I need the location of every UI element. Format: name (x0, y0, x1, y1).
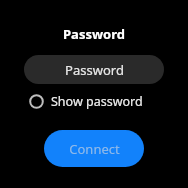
button[interactable]: Show password (29, 90, 159, 112)
button[interactable]: Connect (44, 130, 144, 167)
staticText: Password (65, 61, 124, 79)
staticText: Show password (51, 93, 143, 110)
staticText: Connect (69, 140, 120, 158)
staticText: Password (63, 25, 125, 43)
button[interactable]: Password (24, 55, 164, 84)
